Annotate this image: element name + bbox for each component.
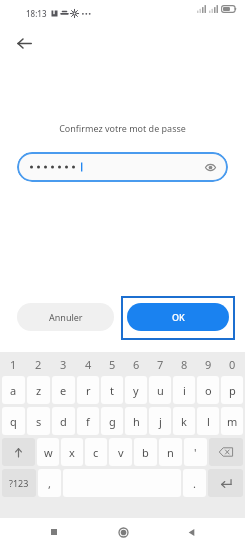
staticText: i — [183, 383, 186, 398]
button[interactable]: q — [2, 407, 25, 435]
button[interactable]: Enter — [208, 469, 243, 497]
staticText: o — [205, 383, 212, 398]
button[interactable]: 5 — [101, 352, 123, 376]
staticText: f — [86, 414, 90, 429]
button[interactable]: l — [197, 407, 219, 435]
staticText: r — [86, 383, 91, 398]
button[interactable]: b — [134, 438, 157, 466]
button[interactable]: 8 — [173, 352, 195, 376]
staticText: OK — [172, 311, 185, 323]
staticText: 4 — [85, 357, 92, 372]
staticText: x — [69, 445, 75, 460]
button[interactable]: 1 — [2, 352, 25, 376]
staticText: h — [133, 414, 140, 429]
staticText: 8 — [181, 357, 188, 372]
button[interactable]: Show password — [17, 152, 228, 182]
staticText: . — [193, 476, 196, 491]
staticText: g — [109, 414, 116, 429]
staticText: 18:13 — [26, 8, 47, 19]
button[interactable]: a — [2, 376, 25, 404]
button[interactable]: Backspace — [209, 438, 243, 466]
button[interactable]: k — [173, 407, 195, 435]
button[interactable]: t — [101, 376, 123, 404]
staticText: w — [44, 445, 53, 460]
staticText: q — [10, 414, 17, 429]
button[interactable]: Recents — [39, 518, 69, 546]
staticText: j — [159, 414, 162, 429]
staticText: v — [118, 445, 124, 460]
button[interactable]: OK — [127, 303, 229, 331]
button[interactable]: h — [125, 407, 147, 435]
button[interactable]: s — [27, 407, 50, 435]
staticText: y — [133, 383, 139, 398]
staticText: e — [60, 383, 67, 398]
button[interactable]: j — [149, 407, 171, 435]
button[interactable]: c — [85, 438, 107, 466]
staticText: Confirmez votre mot de passe — [59, 122, 186, 134]
button[interactable]: 9 — [197, 352, 219, 376]
button[interactable]: g — [101, 407, 123, 435]
staticText: 0 — [229, 357, 236, 372]
staticText: Annuler — [49, 311, 83, 323]
staticText: n — [167, 445, 174, 460]
button[interactable]: y — [125, 376, 147, 404]
staticText: ' — [194, 445, 197, 460]
button[interactable]: Show password — [200, 157, 220, 177]
button[interactable]: m — [221, 407, 243, 435]
staticText: m — [227, 414, 238, 429]
button[interactable]: r — [77, 376, 99, 404]
button[interactable]: u — [149, 376, 171, 404]
staticText: 7 — [157, 357, 164, 372]
button[interactable]: , — [38, 469, 61, 497]
button[interactable]: 6 — [125, 352, 147, 376]
staticText: s — [36, 414, 42, 429]
button[interactable]: z — [27, 376, 50, 404]
button[interactable]: 2 — [27, 352, 50, 376]
button[interactable]: Back — [9, 28, 39, 58]
staticText: c — [93, 445, 99, 460]
staticText: 6 — [133, 357, 140, 372]
button[interactable]: Home — [108, 518, 138, 546]
staticText: ?123 — [9, 477, 29, 489]
staticText: k — [181, 414, 187, 429]
button[interactable]: p — [221, 376, 243, 404]
staticText: z — [36, 383, 42, 398]
button[interactable]: 4 — [77, 352, 99, 376]
button[interactable]: f — [77, 407, 99, 435]
staticText: 2 — [35, 357, 42, 372]
staticText: 5 — [109, 357, 116, 372]
button[interactable]: i — [173, 376, 195, 404]
button[interactable]: 3 — [52, 352, 75, 376]
staticText: b — [142, 445, 149, 460]
button[interactable]: Back — [176, 518, 206, 546]
button[interactable]: ?123 — [2, 469, 36, 497]
staticText: u — [157, 383, 164, 398]
staticText: a — [10, 383, 17, 398]
button[interactable]: o — [197, 376, 219, 404]
button[interactable]: 0 — [221, 352, 243, 376]
button[interactable]: ' — [184, 438, 207, 466]
button[interactable]: x — [61, 438, 83, 466]
staticText: l — [207, 414, 210, 429]
button[interactable]: . — [183, 469, 206, 497]
button[interactable]: Shift — [2, 438, 35, 466]
button[interactable]: e — [52, 376, 75, 404]
button[interactable]: d — [52, 407, 75, 435]
button[interactable]: v — [109, 438, 132, 466]
staticText: d — [60, 414, 67, 429]
staticText: p — [229, 383, 236, 398]
button[interactable]: w — [37, 438, 59, 466]
staticText: t — [110, 383, 114, 398]
button[interactable]: Annuler — [17, 303, 114, 331]
staticText: 3 — [60, 357, 67, 372]
button[interactable]: 7 — [149, 352, 171, 376]
staticText: 9 — [205, 357, 212, 372]
staticText: , — [48, 476, 51, 491]
staticText: 1 — [10, 357, 17, 372]
button[interactable]: n — [159, 438, 182, 466]
